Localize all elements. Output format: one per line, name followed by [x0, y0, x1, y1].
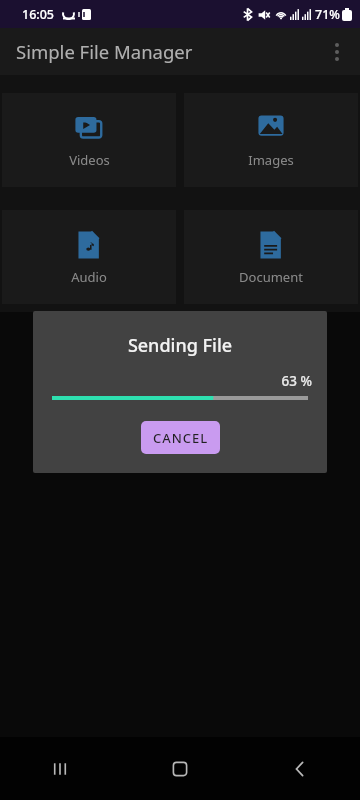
- staticText: Images: [248, 151, 294, 169]
- button[interactable]: Document: [184, 210, 358, 304]
- staticText: 71%: [315, 6, 340, 23]
- staticText: Document: [239, 268, 303, 286]
- button[interactable]: Recent apps: [0, 737, 120, 800]
- staticText: Simple File Manager: [16, 39, 193, 64]
- staticText: Sending File: [33, 333, 327, 358]
- button[interactable]: More options: [313, 28, 360, 75]
- staticText: CANCEL: [153, 429, 209, 447]
- button[interactable]: CANCEL: [141, 421, 220, 454]
- button[interactable]: Videos: [2, 93, 176, 187]
- button[interactable]: Back: [240, 737, 360, 800]
- button[interactable]: Home: [120, 737, 240, 800]
- staticText: 63 %: [33, 372, 312, 390]
- button[interactable]: Images: [184, 93, 358, 187]
- staticText: 16:05: [22, 6, 55, 23]
- button[interactable]: Audio: [2, 210, 176, 304]
- staticText: Audio: [71, 268, 107, 286]
- staticText: Videos: [69, 151, 110, 169]
